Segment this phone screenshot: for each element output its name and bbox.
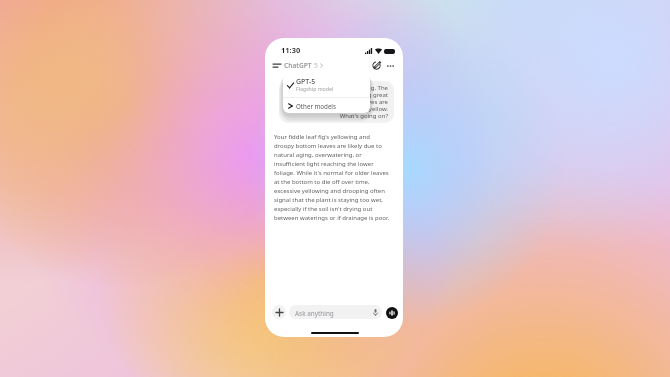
- staticText: Other models: [296, 102, 336, 110]
- staticText: Your fiddle leaf fig's yellowing and dro…: [274, 133, 390, 222]
- button[interactable]: ChatGPT: [284, 59, 323, 72]
- button[interactable]: More options: [384, 59, 397, 72]
- staticText: I just repotted my fiddle leaf fig. The …: [285, 84, 388, 120]
- button[interactable]: Ask anything: [289, 305, 382, 319]
- button[interactable]: Other models: [283, 98, 370, 113]
- staticText: 5: [314, 61, 318, 70]
- button[interactable]: New chat: [370, 59, 383, 72]
- button[interactable]: GPT-5: [283, 74, 370, 97]
- staticText: Ask anything: [295, 309, 334, 318]
- staticText: ChatGPT: [284, 61, 312, 70]
- staticText: GPT-5: [296, 77, 316, 87]
- button[interactable]: Add attachment: [272, 305, 286, 319]
- staticText: 11:30: [281, 45, 301, 55]
- button[interactable]: Menu: [270, 59, 283, 72]
- button[interactable]: Voice mode: [386, 307, 398, 319]
- button[interactable]: I just repotted my fiddle leaf fig. The …: [279, 81, 394, 123]
- staticText: Flagship model: [296, 85, 334, 92]
